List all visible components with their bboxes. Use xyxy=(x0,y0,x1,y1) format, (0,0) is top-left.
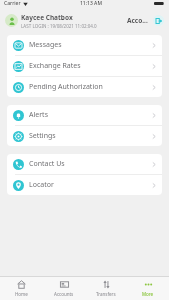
staticText: Contact Us xyxy=(29,159,152,169)
staticText: Exchange Rates xyxy=(29,61,152,71)
staticText: LAST LOGIN : 19/08/2021 11:02:04.0 xyxy=(21,23,97,29)
button[interactable]: Exchange Rates xyxy=(7,56,162,76)
staticText: Acco... xyxy=(127,16,148,25)
staticText: Home xyxy=(15,291,28,297)
button[interactable]: Accounts xyxy=(43,277,85,300)
button[interactable]: Alerts xyxy=(7,105,162,125)
staticText: Carrier xyxy=(4,0,21,7)
staticText: 11:13 AM xyxy=(80,0,102,7)
staticText: Alerts xyxy=(29,110,152,120)
button[interactable]: Home xyxy=(0,277,43,300)
button[interactable]: Settings xyxy=(7,126,162,146)
button[interactable]: Logout xyxy=(153,15,164,26)
button[interactable]: More xyxy=(127,277,169,300)
staticText: Transfers xyxy=(96,291,116,297)
staticText: Pending Authorization xyxy=(29,82,152,92)
staticText: Messages xyxy=(29,40,152,50)
button[interactable]: Acco... xyxy=(125,14,150,27)
button[interactable]: Pending Authorization xyxy=(7,77,162,97)
staticText: More xyxy=(142,291,154,297)
button[interactable]: Messages xyxy=(7,35,162,55)
staticText: Accounts xyxy=(54,291,74,297)
staticText: Settings xyxy=(29,131,152,141)
staticText: Locator xyxy=(29,180,152,190)
staticText: Kaycee Chatbox xyxy=(21,13,73,22)
button[interactable]: Contact Us xyxy=(7,154,162,174)
button[interactable]: Locator xyxy=(7,175,162,195)
button[interactable]: Transfers xyxy=(85,277,127,300)
